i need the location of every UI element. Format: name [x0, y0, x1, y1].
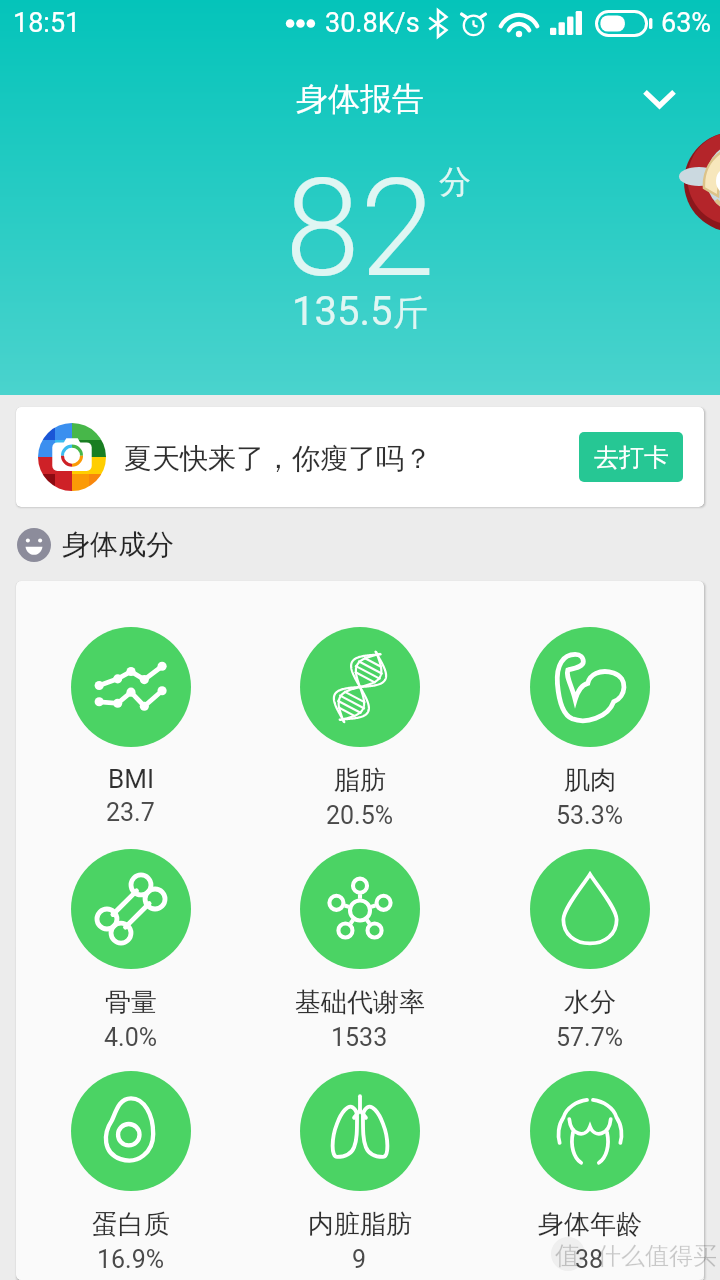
staticText: 斤	[393, 291, 428, 335]
staticText: 38	[575, 1245, 604, 1274]
button[interactable]: 内脏脂肪	[245, 1025, 474, 1274]
button[interactable]: 肌肉	[475, 581, 704, 830]
staticText: 值	[555, 1240, 580, 1271]
staticText: 去打卡	[594, 442, 669, 473]
button[interactable]: 去打卡	[579, 432, 683, 482]
staticText: 30.8K/s	[325, 7, 420, 39]
staticText: 基础代谢率	[295, 986, 425, 1019]
button[interactable]: 基础代谢率	[245, 803, 474, 1052]
staticText: 骨量	[105, 986, 157, 1019]
staticText: 内脏脂肪	[308, 1208, 412, 1241]
button[interactable]: 夏天快来了，你瘦了吗？	[16, 407, 704, 507]
staticText: 夏天快来了，你瘦了吗？	[124, 441, 432, 476]
staticText: 57.7%	[556, 1023, 624, 1052]
staticText: 脂肪	[334, 764, 386, 797]
staticText: 53.3%	[556, 801, 624, 830]
staticText: 16.9%	[97, 1245, 165, 1274]
button[interactable]: BMI	[16, 581, 245, 827]
staticText: 135.5	[292, 288, 393, 335]
staticText: 82	[285, 150, 435, 308]
staticText: 分	[439, 162, 471, 202]
staticText: 肌肉	[564, 764, 616, 797]
button[interactable]: Collapse report	[635, 74, 683, 122]
staticText: 1533	[331, 1023, 388, 1052]
staticText: 18:51	[13, 7, 81, 39]
staticText: 什么值得买	[597, 1241, 717, 1271]
staticText: 身体成分	[62, 527, 174, 562]
staticText: 20.5%	[326, 801, 394, 830]
button[interactable]: 脂肪	[245, 581, 474, 830]
staticText: 9	[352, 1245, 367, 1274]
staticText: 身体年龄	[538, 1208, 642, 1241]
button[interactable]: 身体年龄	[475, 1025, 704, 1274]
button[interactable]: 水分	[475, 803, 704, 1052]
staticText: BMI	[108, 764, 154, 794]
staticText: 23.7	[106, 798, 155, 827]
staticText: 4.0%	[104, 1023, 158, 1052]
button[interactable]: 蛋白质	[16, 1025, 245, 1274]
staticText: 蛋白质	[92, 1208, 170, 1241]
staticText: 水分	[564, 986, 616, 1019]
button[interactable]: 骨量	[16, 803, 245, 1052]
staticText: 63%	[661, 7, 712, 39]
staticText: 身体报告	[296, 79, 424, 119]
